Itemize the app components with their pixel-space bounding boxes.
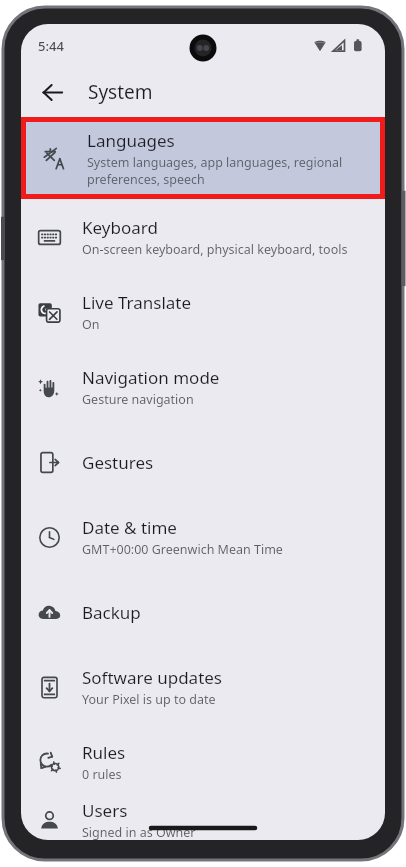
button[interactable]: Rules bbox=[21, 724, 385, 799]
staticText: Live Translate bbox=[82, 291, 192, 314]
staticText: On bbox=[82, 316, 100, 333]
staticText: Navigation mode bbox=[82, 366, 220, 389]
button[interactable]: Languages bbox=[26, 122, 380, 194]
button[interactable]: Navigation mode bbox=[21, 349, 385, 424]
staticText: Your Pixel is up to date bbox=[82, 691, 216, 708]
button[interactable]: Software updates bbox=[21, 649, 385, 724]
button[interactable]: Live Translate bbox=[21, 274, 385, 349]
staticText: Gestures bbox=[82, 451, 154, 474]
staticText: Rules bbox=[82, 741, 126, 764]
staticText: On-screen keyboard, physical keyboard, t… bbox=[82, 241, 348, 258]
button[interactable]: Users bbox=[21, 799, 385, 840]
staticText: System languages, app languages, regiona… bbox=[87, 154, 343, 187]
staticText: Signed in as Owner bbox=[82, 824, 196, 840]
staticText: Gesture navigation bbox=[82, 391, 194, 408]
staticText: System bbox=[88, 79, 153, 105]
staticText: GMT+00:00 Greenwich Mean Time bbox=[82, 541, 283, 558]
staticText: Users bbox=[82, 799, 128, 822]
staticText: Backup bbox=[82, 601, 141, 624]
button[interactable]: Back bbox=[29, 69, 75, 115]
staticText: Software updates bbox=[82, 666, 223, 689]
staticText: 5:44 bbox=[38, 37, 64, 55]
staticText: Languages bbox=[87, 129, 175, 152]
button[interactable]: Date & time bbox=[21, 499, 385, 574]
staticText: Keyboard bbox=[82, 216, 158, 239]
staticText: Date & time bbox=[82, 516, 177, 539]
staticText: 0 rules bbox=[82, 766, 122, 783]
button[interactable]: Backup bbox=[21, 574, 385, 649]
button[interactable]: Keyboard bbox=[21, 199, 385, 274]
button[interactable]: Gestures bbox=[21, 424, 385, 499]
